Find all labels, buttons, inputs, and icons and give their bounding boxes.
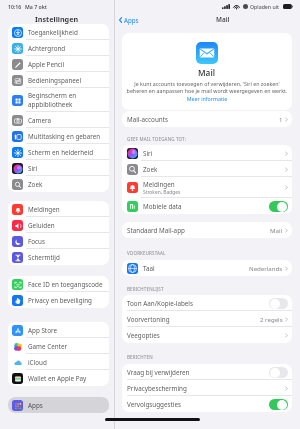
button[interactable]: Wallet en Apple Pay <box>8 370 109 386</box>
staticText: Mail <box>216 15 230 24</box>
staticText: Multitasking en gebaren <box>28 132 101 141</box>
staticText: Veegopties <box>127 331 160 340</box>
button[interactable]: Beginscherm en <box>8 88 109 112</box>
staticText: Schermtijd <box>28 253 60 262</box>
button[interactable]: Siri <box>8 160 109 176</box>
staticText: Standaard Mail-app <box>127 226 185 235</box>
button[interactable]: Standaard Mail-app <box>122 222 292 238</box>
button[interactable]: Switch on <box>269 201 288 212</box>
staticText: Nederlands <box>249 264 283 272</box>
staticText: iCloud <box>28 358 47 367</box>
staticText: 2 regels <box>260 315 283 323</box>
staticText: Mobiele data <box>143 202 182 211</box>
staticText: Apps <box>124 16 139 24</box>
staticText: VOORKEURSTAAL <box>127 250 166 256</box>
button[interactable]: Face ID en toegangscode <box>8 276 109 292</box>
staticText: Zoek <box>143 165 158 174</box>
staticText: BERICHTENLIJST <box>127 286 164 292</box>
button[interactable]: Toon Aan/Kopie-labels <box>122 295 292 311</box>
staticText: appbibliotheek <box>28 100 73 109</box>
staticText: Toegankelijkheid <box>28 28 78 37</box>
button[interactable]: Multitasking en gebaren <box>8 128 109 144</box>
button[interactable]: Meer informatie <box>122 95 292 102</box>
staticText: Mail <box>270 226 283 234</box>
button[interactable]: Switch on <box>269 399 288 410</box>
button[interactable]: Apple Pencil <box>8 56 109 72</box>
staticText: Zoek <box>28 180 43 189</box>
button[interactable]: Geluiden <box>8 217 109 233</box>
staticText: Ma 7 okt <box>25 3 47 10</box>
staticText: Opladen uit <box>250 3 280 10</box>
staticText: Meldingen <box>143 180 175 189</box>
button[interactable]: iCloud <box>8 354 109 370</box>
button[interactable]: Taal <box>122 260 292 276</box>
button[interactable]: Game Center <box>8 338 109 354</box>
staticText: Je kunt accounts toevoegen of verwijdere… <box>122 80 292 95</box>
staticText: Scherm en helderheid <box>28 148 94 157</box>
button[interactable]: Schermtijd <box>8 249 109 265</box>
staticText: Beginscherm en <box>28 91 77 100</box>
button[interactable]: Mobiele data <box>122 198 292 214</box>
staticText: Privacy en beveiliging <box>28 296 92 305</box>
staticText: Mail-accounts <box>127 115 168 124</box>
button[interactable]: Zoek <box>8 176 109 192</box>
staticText: Face ID en toegangscode <box>28 280 103 289</box>
button[interactable]: Siri <box>122 145 292 161</box>
button[interactable]: Veegopties <box>122 327 292 343</box>
button[interactable]: Switch off <box>269 298 288 309</box>
button[interactable]: Switch off <box>269 367 288 378</box>
button[interactable]: Camera <box>8 112 109 128</box>
staticText: Vraag bij verwijderen <box>127 368 190 377</box>
button[interactable]: Apps <box>115 15 143 25</box>
staticText: GEEF MAIL TOEGANG TOT: <box>127 136 187 142</box>
staticText: 10:16 <box>8 3 22 10</box>
staticText: Camera <box>28 116 51 125</box>
staticText: Bedieningspaneel <box>28 76 82 85</box>
staticText: Geluiden <box>28 221 55 230</box>
staticText: App Store <box>28 326 57 335</box>
staticText: 1 <box>279 115 283 123</box>
staticText: Focus <box>28 237 46 246</box>
button[interactable]: Mail-accounts <box>122 111 292 127</box>
button[interactable]: Meldingen <box>122 177 292 198</box>
staticText: Voorvertoning <box>127 315 170 324</box>
staticText: Mail <box>198 67 216 78</box>
button[interactable]: Privacy en beveiliging <box>8 292 109 308</box>
button[interactable]: App Store <box>8 322 109 338</box>
button[interactable]: Vraag bij verwijderen <box>122 364 292 380</box>
staticText: Instellingen <box>35 14 79 24</box>
button[interactable]: Meldingen <box>8 201 109 217</box>
staticText: Siri <box>28 164 38 173</box>
staticText: Apple Pencil <box>28 60 65 69</box>
staticText: Siri <box>143 149 153 158</box>
staticText: Stroken, Badges <box>143 189 181 196</box>
button[interactable]: Apps <box>8 397 109 413</box>
button[interactable]: Zoek <box>122 161 292 177</box>
staticText: Wallet en Apple Pay <box>28 374 87 383</box>
button[interactable]: Toegankelijkheid <box>8 24 109 40</box>
button[interactable]: Scherm en helderheid <box>8 144 109 160</box>
staticText: Privacybescherming <box>127 384 187 393</box>
button[interactable]: Voorvertoning <box>122 311 292 327</box>
staticText: Toon Aan/Kopie-labels <box>127 299 194 308</box>
staticText: Meldingen <box>28 205 60 214</box>
staticText: BERICHTEN <box>127 354 153 360</box>
button[interactable]: Focus <box>8 233 109 249</box>
button[interactable]: Privacybescherming <box>122 380 292 396</box>
button[interactable]: Achtergrond <box>8 40 109 56</box>
staticText: Taal <box>143 264 155 273</box>
staticText: Apps <box>28 401 43 410</box>
staticText: Game Center <box>28 342 68 351</box>
button[interactable]: Bedieningspaneel <box>8 72 109 88</box>
staticText: Achtergrond <box>28 44 66 53</box>
staticText: Vervolgsuggesties <box>127 400 181 409</box>
button[interactable]: Vervolgsuggesties <box>122 396 292 412</box>
